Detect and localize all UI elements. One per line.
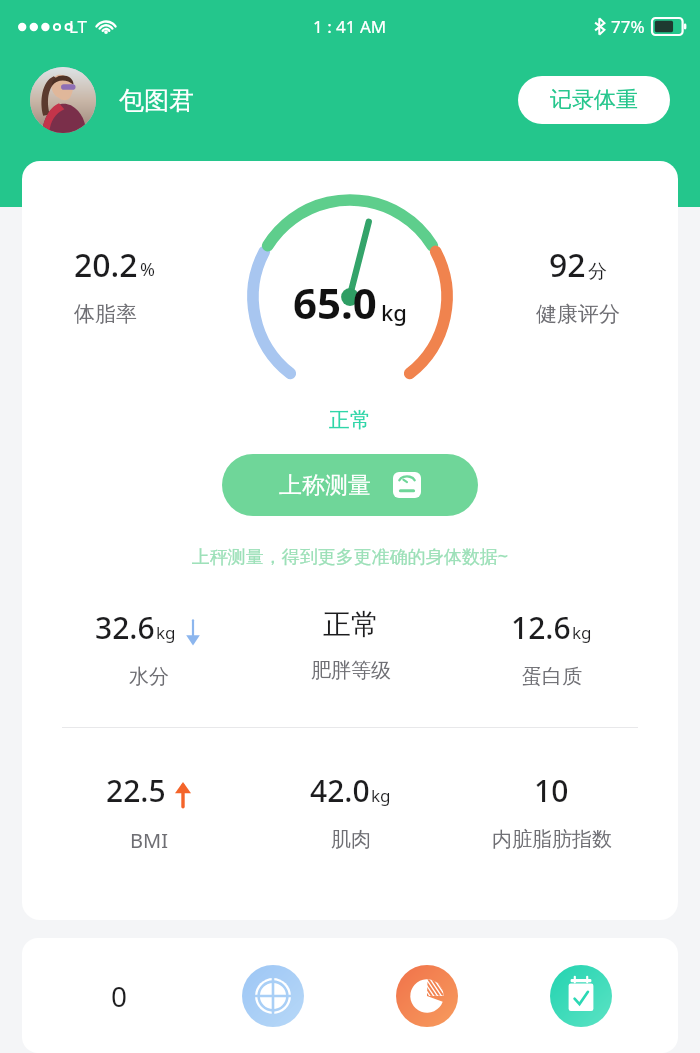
- staticText: 正常: [329, 407, 371, 433]
- button[interactable]: 22.5: [48, 770, 250, 854]
- staticText: 包图君: [119, 85, 194, 116]
- staticText: 10: [534, 770, 569, 811]
- staticText: 0: [111, 977, 128, 1015]
- staticText: 蛋白质: [522, 664, 582, 689]
- staticText: kg: [381, 297, 407, 327]
- staticText: 上秤测量，得到更多更准确的身体数据~: [22, 544, 678, 569]
- button[interactable]: 10: [451, 770, 652, 852]
- staticText: 肥胖等级: [311, 658, 391, 683]
- staticText: 内脏脂肪指数: [492, 827, 612, 852]
- button[interactable]: Basketball: [242, 965, 304, 1027]
- staticText: 健康评分: [536, 301, 620, 327]
- staticText: 1 : 41 AM: [313, 15, 387, 38]
- button[interactable]: 42.0: [250, 770, 451, 852]
- button[interactable]: 12.6: [451, 607, 652, 689]
- staticText: 32.6: [95, 607, 155, 648]
- staticText: 水分: [129, 664, 169, 689]
- staticText: kg: [371, 784, 391, 807]
- staticText: 肌肉: [331, 827, 371, 852]
- staticText: 20.2: [74, 243, 138, 287]
- button[interactable]: 记录体重: [518, 76, 670, 124]
- button[interactable]: 上称测量: [222, 454, 478, 516]
- button[interactable]: Plan: [550, 965, 612, 1027]
- staticText: kg: [156, 621, 176, 644]
- staticText: 记录体重: [550, 86, 638, 114]
- staticText: 77%: [611, 15, 645, 38]
- button[interactable]: Profile avatar: [30, 67, 96, 133]
- staticText: kg: [572, 621, 592, 644]
- button[interactable]: 32.6: [48, 607, 250, 689]
- staticText: 体脂率: [74, 301, 137, 327]
- staticText: %: [140, 257, 155, 282]
- staticText: 上称测量: [279, 471, 371, 500]
- staticText: 22.5: [106, 770, 166, 811]
- staticText: BMI: [130, 827, 168, 854]
- button[interactable]: Statistics: [396, 965, 458, 1027]
- staticText: 42.0: [310, 770, 370, 811]
- staticText: 65.0: [293, 274, 377, 331]
- staticText: 正常: [323, 607, 379, 642]
- staticText: 分: [588, 260, 607, 284]
- staticText: 12.6: [511, 607, 571, 648]
- button[interactable]: 正常: [250, 607, 451, 683]
- staticText: 92: [549, 243, 586, 287]
- staticText: LT: [69, 15, 88, 38]
